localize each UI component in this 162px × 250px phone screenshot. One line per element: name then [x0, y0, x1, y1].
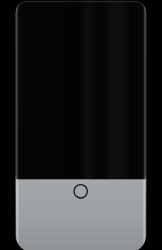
button[interactable]: Home: [73, 184, 88, 199]
